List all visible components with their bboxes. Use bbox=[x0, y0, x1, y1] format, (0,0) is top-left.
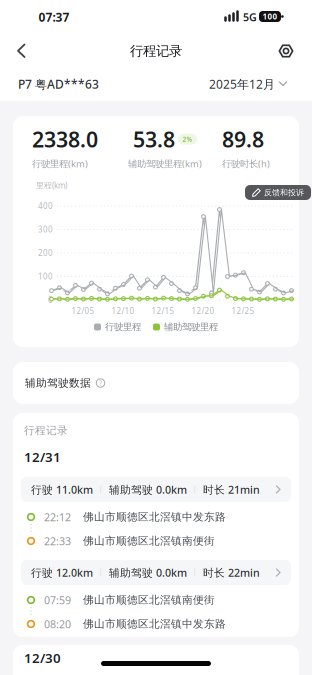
staticText: 佛山市顺德区北滘镇中发东路 bbox=[83, 617, 226, 630]
staticText: 辅助驾驶里程 bbox=[164, 321, 218, 333]
staticText: 12/30 bbox=[24, 649, 61, 667]
staticText: 时长 22min bbox=[203, 565, 260, 580]
staticText: 反馈和投诉 bbox=[264, 188, 304, 197]
button[interactable]: 行驶 12.0km bbox=[21, 560, 291, 585]
staticText: 12/20 bbox=[191, 306, 214, 316]
staticText: 里程(km) bbox=[36, 180, 67, 191]
staticText: 行程记录 bbox=[130, 43, 182, 59]
staticText: 丨 bbox=[97, 485, 105, 494]
staticText: 行程记录 bbox=[24, 424, 68, 437]
staticText: 丨 bbox=[97, 568, 105, 577]
staticText: 佛山市顺德区北滘镇中发东路 bbox=[83, 510, 226, 523]
staticText: 08:20 bbox=[44, 617, 71, 631]
staticText: 丨 bbox=[191, 485, 199, 494]
staticText: 佛山市顺德区北滘镇南便街 bbox=[83, 593, 215, 606]
staticText: 12/15 bbox=[151, 306, 174, 316]
staticText: 100 bbox=[38, 271, 53, 282]
button[interactable]: 2025年12月 bbox=[209, 77, 287, 91]
staticText: 12/25 bbox=[231, 306, 254, 316]
staticText: 07:59 bbox=[44, 593, 71, 607]
staticText: 2025年12月 bbox=[209, 76, 275, 92]
staticText: 辅助驾驶 0.0km bbox=[109, 565, 187, 580]
staticText: 行驶里程(km) bbox=[32, 157, 88, 170]
staticText: 89.8 bbox=[222, 125, 264, 153]
staticText: 400 bbox=[38, 201, 53, 211]
staticText: 07:37 bbox=[38, 9, 69, 25]
button[interactable]: 行驶 11.0km bbox=[21, 477, 291, 502]
staticText: 300 bbox=[38, 224, 53, 235]
staticText: 12/31 bbox=[24, 448, 61, 466]
staticText: 行驶 11.0km bbox=[31, 482, 93, 497]
staticText: 2% bbox=[182, 135, 192, 144]
staticText: 2338.0 bbox=[32, 125, 98, 153]
button[interactable]: 辅助驾驶数据 bbox=[13, 362, 299, 404]
staticText: 12/10 bbox=[111, 306, 134, 316]
staticText: 行驶时长(h) bbox=[222, 157, 270, 170]
staticText: P7 粤AD***63 bbox=[18, 76, 99, 92]
staticText: 22:33 bbox=[44, 534, 71, 548]
staticText: 佛山市顺德区北滘镇南便街 bbox=[83, 534, 215, 547]
staticText: 100 bbox=[262, 11, 277, 22]
staticText: 0 bbox=[48, 295, 53, 305]
staticText: 时长 21min bbox=[203, 482, 260, 497]
staticText: 辅助驾驶 0.0km bbox=[109, 482, 187, 497]
staticText: 12/05 bbox=[71, 306, 94, 316]
staticText: 22:12 bbox=[44, 510, 71, 524]
staticText: 辅助驾驶数据 bbox=[25, 376, 91, 389]
staticText: 辅助驾驶里程(km) bbox=[128, 157, 202, 170]
staticText: 行驶 12.0km bbox=[31, 565, 93, 580]
staticText: 200 bbox=[38, 248, 53, 258]
staticText: 行驶里程 bbox=[105, 321, 141, 333]
staticText: 53.8 bbox=[133, 125, 175, 153]
staticText: ? bbox=[99, 379, 102, 387]
button[interactable]: Back bbox=[4, 33, 40, 69]
button[interactable]: 反馈和投诉 bbox=[245, 185, 311, 200]
staticText: 5G bbox=[243, 10, 257, 24]
staticText: 丨 bbox=[191, 568, 199, 577]
button[interactable]: Settings bbox=[272, 37, 300, 65]
